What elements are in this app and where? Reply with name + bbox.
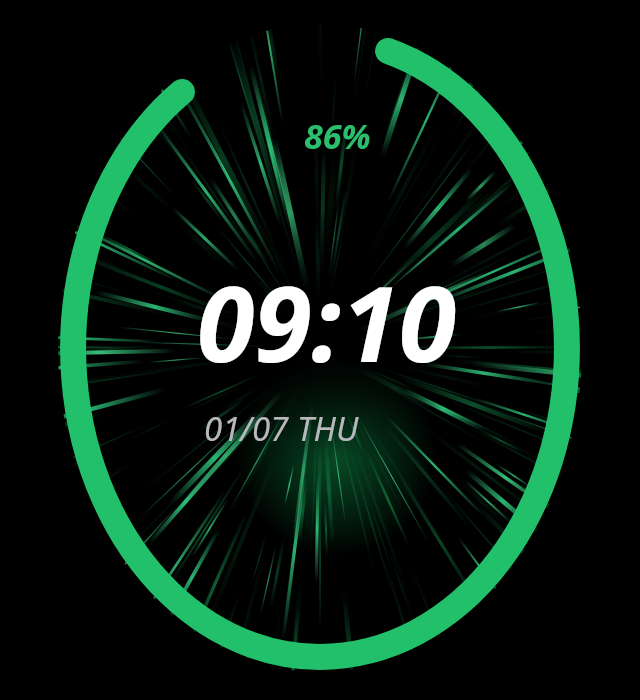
button[interactable]: 01/07 THU	[204, 406, 359, 451]
button[interactable]: Warp speed watch face	[0, 0, 640, 700]
button[interactable]: 09:10	[197, 251, 457, 393]
button[interactable]: 86%	[304, 113, 371, 159]
